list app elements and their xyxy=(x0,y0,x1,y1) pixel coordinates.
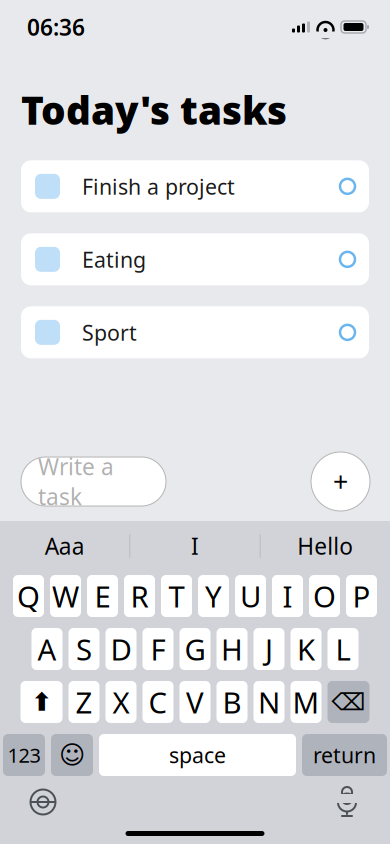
staticText: 123 xyxy=(7,742,40,768)
staticText: J xyxy=(265,629,273,668)
staticText: W xyxy=(52,576,79,615)
staticText: K xyxy=(297,629,315,668)
staticText: ⌫ xyxy=(331,688,365,716)
button[interactable]: Y xyxy=(198,575,229,617)
staticText: E xyxy=(94,576,110,615)
staticText: Write a task xyxy=(38,451,114,512)
button[interactable]: V xyxy=(179,681,210,723)
button[interactable]: E xyxy=(87,575,118,617)
staticText: X xyxy=(112,682,129,721)
staticText: T xyxy=(168,576,184,615)
button[interactable]: Hello xyxy=(261,531,390,561)
button[interactable]: T xyxy=(161,575,192,617)
button[interactable]: Eating xyxy=(21,233,369,285)
button[interactable]: Next keyboard xyxy=(23,782,63,822)
staticText: return xyxy=(313,741,376,769)
button[interactable]: M xyxy=(290,681,321,723)
button[interactable]: Delete xyxy=(327,681,369,723)
staticText: I xyxy=(191,531,199,561)
button[interactable]: I xyxy=(130,531,260,561)
staticText: L xyxy=(335,629,350,668)
button[interactable]: D xyxy=(105,628,136,670)
staticText: A xyxy=(37,629,56,668)
staticText: Sport xyxy=(82,318,137,346)
button[interactable]: O xyxy=(309,575,340,617)
button[interactable]: W xyxy=(50,575,81,617)
button[interactable]: N xyxy=(253,681,284,723)
button[interactable]: Emoji xyxy=(51,734,93,776)
button[interactable]: C xyxy=(142,681,173,723)
button[interactable]: space xyxy=(99,734,296,776)
button[interactable]: S xyxy=(68,628,99,670)
staticText: + xyxy=(333,464,348,499)
staticText: G xyxy=(184,629,205,668)
staticText: Y xyxy=(205,576,222,615)
button[interactable]: Dictate xyxy=(327,782,367,822)
staticText: Q xyxy=(17,576,40,615)
button[interactable]: I xyxy=(272,575,303,617)
staticText: ☺ xyxy=(59,741,85,769)
button[interactable]: Q xyxy=(13,575,44,617)
staticText: Aaa xyxy=(45,531,85,561)
button[interactable]: L xyxy=(327,628,358,670)
staticText: V xyxy=(186,682,204,721)
staticText: 06:36 xyxy=(27,12,85,42)
staticText: ⬆ xyxy=(31,688,52,716)
button[interactable]: A xyxy=(31,628,62,670)
staticText: Hello xyxy=(297,531,353,561)
staticText: N xyxy=(258,682,280,721)
staticText: O xyxy=(313,576,336,615)
button[interactable]: Write a task xyxy=(21,457,166,506)
staticText: B xyxy=(222,682,241,721)
staticText: M xyxy=(292,682,319,721)
button[interactable]: Shift xyxy=(20,681,62,723)
button[interactable]: Aaa xyxy=(0,531,129,561)
button[interactable]: G xyxy=(179,628,210,670)
button[interactable]: F xyxy=(142,628,173,670)
staticText: R xyxy=(130,576,148,615)
button[interactable]: B xyxy=(216,681,247,723)
staticText: I xyxy=(282,576,292,615)
staticText: Today's tasks xyxy=(21,84,287,135)
button[interactable]: X xyxy=(105,681,136,723)
button[interactable]: Add task xyxy=(311,452,370,511)
button[interactable]: Z xyxy=(68,681,99,723)
staticText: U xyxy=(240,576,261,615)
button[interactable]: P xyxy=(346,575,377,617)
staticText: S xyxy=(76,629,92,668)
staticText: P xyxy=(352,576,370,615)
button[interactable]: H xyxy=(216,628,247,670)
button[interactable]: K xyxy=(290,628,321,670)
button[interactable]: return xyxy=(302,734,387,776)
button[interactable]: R xyxy=(124,575,155,617)
staticText: Finish a project xyxy=(82,172,235,200)
staticText: Eating xyxy=(82,245,146,273)
staticText: H xyxy=(221,629,243,668)
staticText: C xyxy=(148,682,167,721)
staticText: D xyxy=(110,629,131,668)
staticText: F xyxy=(150,629,165,668)
button[interactable]: J xyxy=(253,628,284,670)
staticText: Z xyxy=(75,682,92,721)
button[interactable]: Finish a project xyxy=(21,160,369,212)
button[interactable]: 123 xyxy=(3,734,45,776)
staticText: space xyxy=(169,741,226,769)
button[interactable]: Sport xyxy=(21,306,369,358)
button[interactable]: U xyxy=(235,575,266,617)
